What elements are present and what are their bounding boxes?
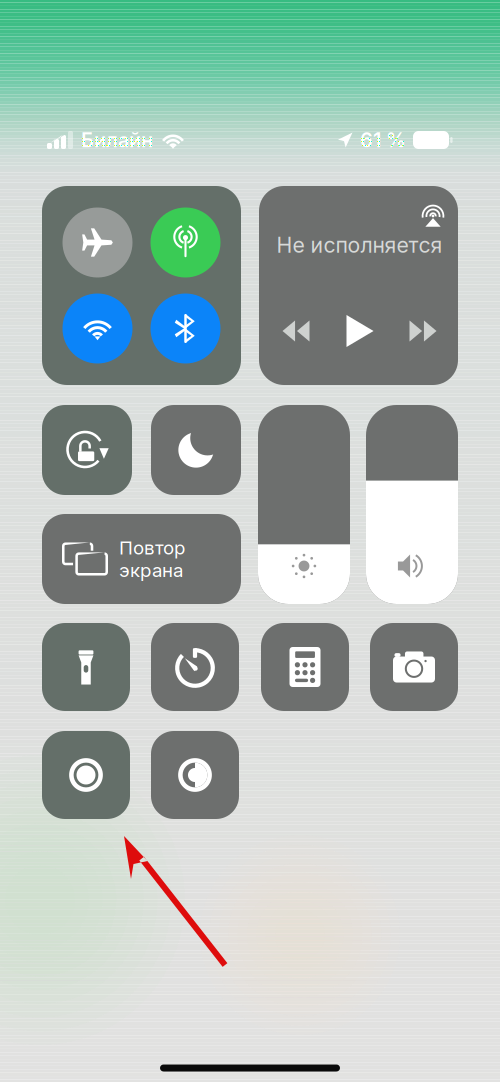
button[interactable]: Блокировка ориентации [42,405,132,495]
staticText: 61 % [360,128,406,152]
button[interactable]: Запись экрана [42,731,130,819]
button[interactable]: Яркость [258,405,350,604]
button[interactable]: Bluetooth [150,293,220,363]
button[interactable]: Сотовые данные [150,207,220,277]
button[interactable]: Назад [272,309,320,353]
button[interactable]: Таймер [151,623,239,711]
button[interactable]: Воспроизвести [336,309,384,353]
button[interactable]: Камера [370,623,458,711]
staticText: Повтор экрана [119,536,185,582]
button[interactable]: Не беспокоить [151,405,241,495]
button[interactable]: Вперёд [399,309,447,353]
button[interactable]: Wi-Fi [62,293,132,363]
button[interactable]: AirPlay [415,197,451,233]
button[interactable]: Громкость [366,405,458,604]
staticText: Не исполняется [276,232,442,258]
button[interactable]: Повтор экрана [42,514,241,604]
button[interactable]: Авиарежим [62,207,132,277]
staticText: Билайн [81,128,153,152]
button[interactable]: Фонарик [42,623,130,711]
button[interactable]: Увеличение контраста [151,731,239,819]
button[interactable]: Калькулятор [261,623,349,711]
